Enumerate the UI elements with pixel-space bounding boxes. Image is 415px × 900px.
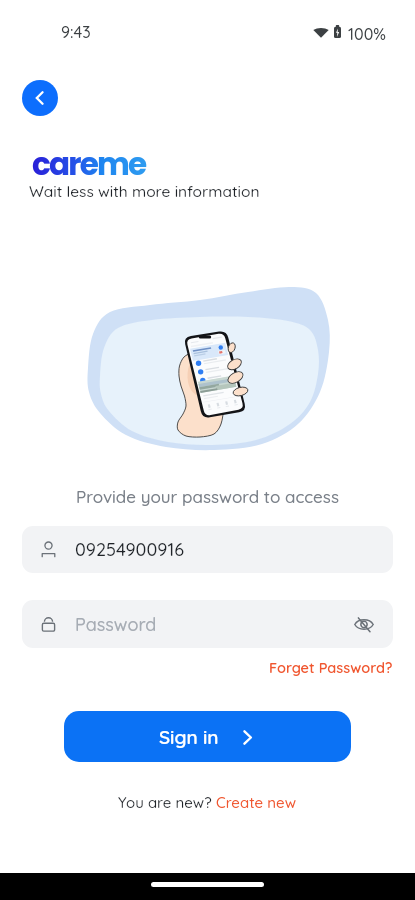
staticText: Provide your password to access [76, 486, 339, 507]
button[interactable]: Password [22, 600, 393, 648]
staticText: careme [32, 142, 146, 185]
staticText: You are new? [118, 793, 216, 812]
button[interactable]: Forget Password? [247, 655, 415, 679]
staticText: Sign in [159, 725, 219, 749]
button[interactable]: Show password [351, 611, 377, 637]
button[interactable]: Create new [216, 793, 297, 812]
button[interactable]: Back [22, 80, 58, 116]
button[interactable]: Sign in [64, 711, 351, 762]
button[interactable]: 09254900916 [22, 526, 393, 573]
staticText: Wait less with more information [29, 181, 260, 200]
staticText: Create new [216, 793, 297, 812]
staticText: 9:43 [61, 22, 91, 42]
staticText: 100% [348, 24, 386, 44]
staticText: Forget Password? [269, 658, 393, 676]
staticText: Password [75, 613, 157, 636]
staticText: 09254900916 [75, 538, 184, 561]
